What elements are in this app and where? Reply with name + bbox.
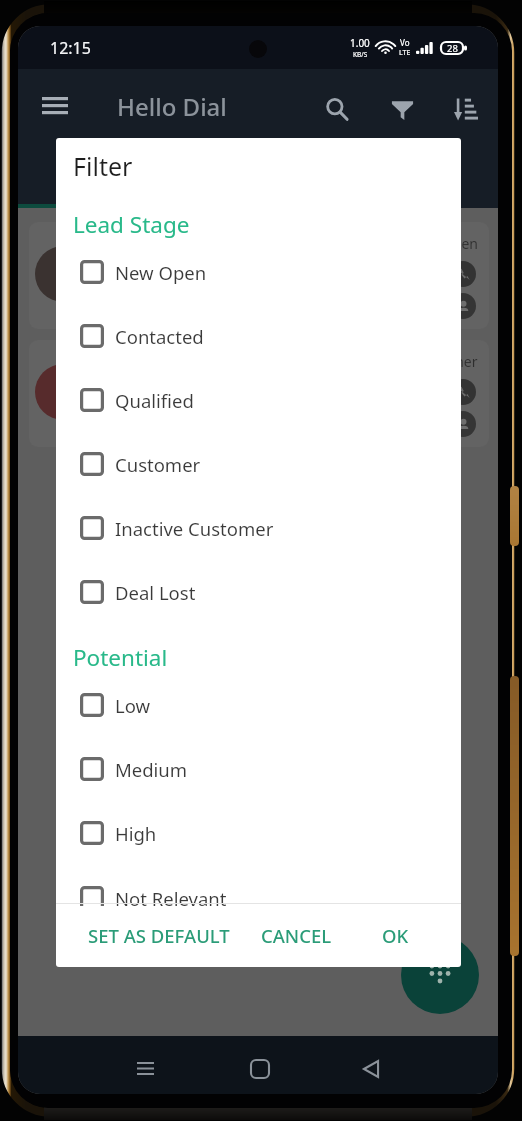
button[interactable]: Recents — [119, 1042, 172, 1094]
button[interactable]: CANCEL — [259, 914, 334, 957]
staticText: Vo — [400, 37, 410, 48]
button[interactable]: Contacted — [56, 304, 461, 368]
staticText: Inactive Customer — [115, 516, 274, 541]
staticText: 1.00 — [350, 36, 370, 50]
button[interactable]: New Open — [56, 240, 461, 304]
button[interactable]: Back — [344, 1042, 397, 1094]
staticText: Medium — [115, 757, 188, 782]
button[interactable]: Qualified — [56, 368, 461, 432]
staticText: +91 98765 43210 — [103, 390, 215, 409]
button[interactable]: Filter — [380, 87, 424, 131]
staticText: 28 — [447, 42, 458, 55]
staticText: Hello Dial — [117, 90, 227, 123]
staticText: KB/S — [353, 50, 368, 59]
staticText: Lead Stage — [73, 209, 190, 240]
button[interactable]: Search — [315, 87, 359, 131]
button[interactable]: Inactive Customer — [56, 496, 461, 560]
button[interactable]: Contact details — [450, 293, 476, 319]
staticText: Not Relevant — [115, 886, 227, 906]
button[interactable]: Medium — [56, 737, 461, 801]
staticText: +91 98765 43210 — [103, 272, 215, 291]
button[interactable]: Deal Lost — [56, 560, 461, 624]
button[interactable]: Vinay Kumar — [29, 222, 489, 329]
button[interactable]: Contact details — [450, 411, 476, 437]
staticText: Filter — [73, 149, 133, 183]
button[interactable]: Call — [450, 379, 476, 405]
staticText: Customer — [115, 452, 201, 477]
staticText: Vinay Kumar — [103, 242, 205, 265]
staticText: Potential — [73, 642, 168, 673]
button[interactable]: Menu — [37, 87, 73, 123]
button[interactable]: SET AS DEFAULT — [86, 914, 232, 957]
staticText: CANCEL — [261, 923, 332, 948]
staticText: Qualified — [115, 388, 194, 413]
button[interactable]: Low — [56, 673, 461, 737]
button[interactable]: Dialpad — [401, 936, 479, 1014]
button[interactable]: OK — [380, 914, 411, 957]
button[interactable]: Home — [233, 1042, 286, 1094]
staticText: Contacted — [115, 324, 204, 349]
button[interactable]: Not Relevant — [56, 866, 461, 906]
staticText: OK — [382, 923, 409, 948]
button[interactable]: Call — [450, 261, 476, 287]
staticText: 12:15 — [50, 37, 91, 59]
staticText: Deal Lost — [115, 580, 196, 605]
staticText: New Open — [409, 234, 478, 253]
button[interactable]: Customer — [56, 432, 461, 496]
staticText: High — [115, 821, 157, 846]
button[interactable]: High — [56, 801, 461, 865]
staticText: SET AS DEFAULT — [88, 923, 230, 948]
staticText: Customer — [413, 352, 478, 371]
button[interactable]: Vinay Kumar — [29, 340, 489, 447]
staticText: LTE — [399, 48, 411, 58]
staticText: Low — [115, 693, 151, 718]
staticText: New Open — [115, 260, 207, 285]
button[interactable]: Sort — [444, 87, 488, 131]
